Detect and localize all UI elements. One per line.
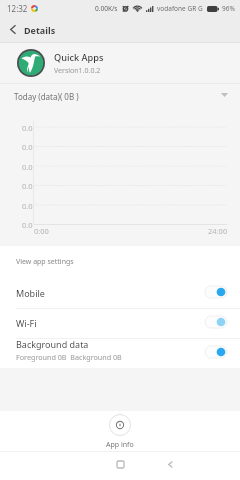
button[interactable]: Today (data)( 0B ) xyxy=(14,84,226,109)
staticText: Mobile xyxy=(16,287,45,299)
staticText: Quick Apps xyxy=(54,51,104,64)
staticText: 0.0 xyxy=(22,162,33,172)
button[interactable]: Home xyxy=(106,451,134,477)
button[interactable]: App info xyxy=(96,411,144,450)
staticText: 12:32 xyxy=(7,3,28,14)
staticText: App info xyxy=(106,440,134,450)
staticText: Version1.0.0.2 xyxy=(54,66,101,76)
button[interactable]: Background data xyxy=(0,338,240,368)
staticText: 0.0 xyxy=(22,201,33,211)
staticText: View app settings xyxy=(16,257,74,267)
staticText: 96% xyxy=(222,4,235,13)
staticText: 0.0 xyxy=(22,220,33,230)
staticText: 0:00 xyxy=(34,226,49,236)
staticText: 0.0 xyxy=(22,181,33,191)
button[interactable]: Back xyxy=(0,17,25,42)
staticText: Background data xyxy=(16,338,89,350)
button[interactable]: Mobile xyxy=(0,278,240,308)
button[interactable]: Wi-Fi xyxy=(0,308,240,338)
button[interactable]: Back xyxy=(156,451,184,477)
staticText: Wi-Fi xyxy=(16,317,37,329)
staticText: 0.0 xyxy=(22,123,33,133)
staticText: 24:00 xyxy=(208,226,228,236)
staticText: vodafone GR G xyxy=(157,4,203,13)
staticText: Today (data)( 0B ) xyxy=(14,91,79,102)
staticText: Details xyxy=(24,24,56,36)
staticText: Foreground 0B Background 0B xyxy=(16,352,122,362)
staticText: 0.00K/s xyxy=(95,4,118,13)
staticText: 0.0 xyxy=(22,142,33,152)
